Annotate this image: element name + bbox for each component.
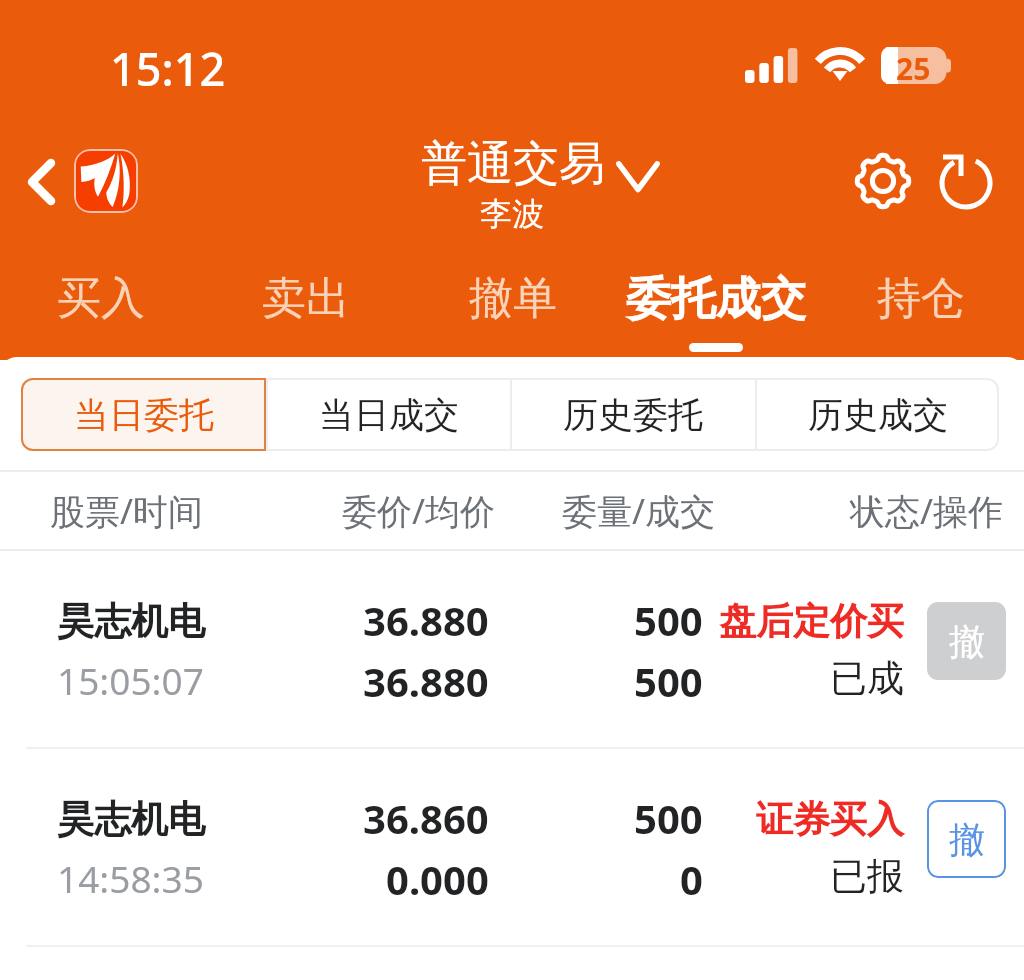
staticText: 15:05:07: [57, 655, 204, 705]
staticText: 证券买入: [756, 796, 904, 843]
button[interactable]: Settings: [847, 145, 919, 217]
button[interactable]: 持仓: [866, 248, 976, 357]
button[interactable]: 当日委托: [21, 378, 266, 451]
staticText: 500: [634, 791, 703, 845]
staticText: 历史成交: [808, 393, 948, 437]
button[interactable]: Trading app: [74, 149, 138, 213]
staticText: 李波: [480, 194, 544, 234]
staticText: 买入: [57, 271, 145, 326]
staticText: 股票/时间: [50, 487, 204, 535]
button[interactable]: Refresh: [929, 145, 1001, 217]
staticText: 撤: [949, 619, 985, 664]
staticText: 当日成交: [319, 393, 459, 437]
staticText: 36.880: [363, 654, 489, 708]
button[interactable]: 历史成交: [755, 378, 1000, 451]
staticText: 昊志机电: [57, 796, 205, 843]
staticText: 委价/均价: [342, 487, 496, 535]
staticText: 撤: [949, 817, 985, 862]
staticText: 已报: [830, 853, 904, 900]
button[interactable]: 历史委托: [510, 378, 755, 451]
staticText: 已成: [830, 655, 904, 702]
staticText: 0.000: [386, 852, 489, 906]
staticText: 36.880: [363, 593, 489, 647]
button[interactable]: 昊志机电: [0, 749, 1024, 945]
button[interactable]: 当日成交: [266, 378, 511, 451]
staticText: 36.860: [363, 791, 489, 845]
staticText: 持仓: [877, 271, 965, 326]
button[interactable]: 买入: [46, 248, 156, 357]
button[interactable]: 卖出: [251, 248, 361, 357]
staticText: 普通交易: [421, 135, 605, 193]
staticText: 15:12: [110, 38, 226, 99]
staticText: 14:58:35: [57, 853, 204, 903]
staticText: 委托成交: [626, 271, 806, 328]
button[interactable]: 昊志机电: [0, 551, 1024, 747]
staticText: 0: [680, 852, 703, 906]
staticText: 500: [634, 593, 703, 647]
button[interactable]: Back: [10, 151, 72, 213]
button[interactable]: 委托成交: [616, 248, 816, 357]
staticText: 盘后定价买: [719, 598, 904, 645]
staticText: 25: [896, 48, 931, 88]
staticText: 当日委托: [74, 393, 214, 437]
staticText: 历史委托: [563, 393, 703, 437]
button[interactable]: Cancel order: [927, 602, 1006, 680]
staticText: 委量/成交: [562, 487, 716, 535]
staticText: 撤单: [469, 271, 557, 326]
button[interactable]: 普通交易: [421, 135, 660, 193]
button[interactable]: 撤单: [458, 248, 568, 357]
staticText: 500: [634, 654, 703, 708]
staticText: 状态/操作: [850, 487, 1004, 535]
button[interactable]: Cancel order: [927, 800, 1006, 878]
staticText: 昊志机电: [57, 598, 205, 645]
staticText: 卖出: [262, 271, 350, 326]
